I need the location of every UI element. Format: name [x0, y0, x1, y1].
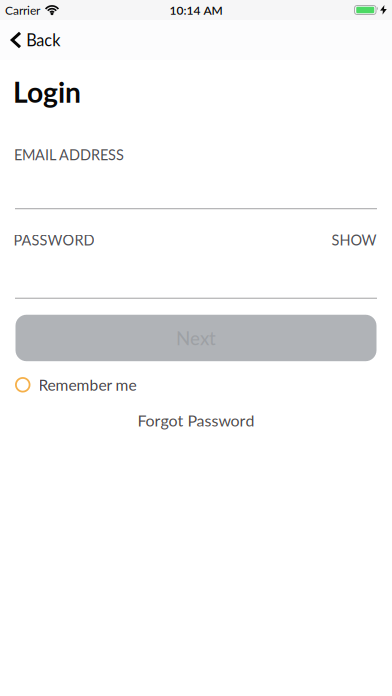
staticText: Next	[176, 327, 216, 349]
staticText: 10:14 AM	[169, 3, 222, 17]
staticText: Back	[26, 30, 60, 50]
staticText: PASSWORD	[13, 231, 94, 249]
button[interactable]: Next	[15, 315, 376, 361]
staticText: EMAIL ADDRESS	[14, 146, 124, 163]
button[interactable]: Remember me	[0, 375, 136, 394]
button[interactable]: Forgot Password	[137, 411, 254, 430]
button[interactable]: SHOW	[331, 231, 376, 249]
button[interactable]: Back	[0, 30, 60, 50]
staticText: Forgot Password	[137, 411, 254, 430]
staticText: SHOW	[331, 231, 376, 249]
staticText: Carrier	[5, 3, 40, 17]
staticText: Remember me	[38, 375, 136, 394]
staticText: Login	[13, 75, 81, 109]
